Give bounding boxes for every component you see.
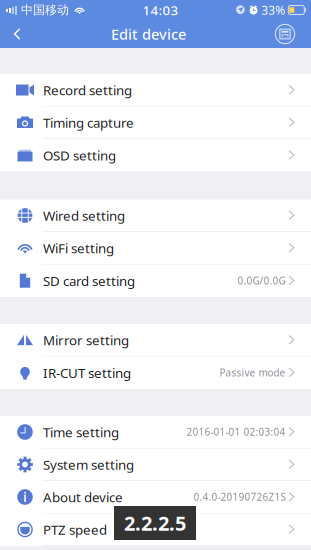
staticText: About device [43,488,123,506]
button[interactable]: Save [262,20,311,48]
staticText: Time setting [43,423,119,441]
button[interactable]: IR-CUT setting [0,356,311,389]
staticText: 2016-01-01 02:03:04 [186,425,285,439]
staticText: Wired setting [43,207,125,224]
staticText: 中国移动 [21,3,69,17]
button[interactable]: System setting [0,448,311,481]
staticText: Record setting [43,81,132,99]
button[interactable]: SD card setting [0,264,311,297]
staticText: IR-CUT setting [43,364,131,382]
staticText: 2.2.2.5 [124,510,186,536]
button[interactable]: WiFi setting [0,232,311,264]
button[interactable]: About device [0,481,311,513]
button[interactable]: Timing capture [0,106,311,139]
button[interactable]: PTZ speed [0,513,311,546]
staticText: Edit device [111,24,186,44]
button[interactable]: Record setting [0,74,311,106]
staticText: System setting [43,456,134,473]
button[interactable]: Back [0,20,35,48]
staticText: OSD setting [43,146,116,164]
staticText: Mirror setting [43,331,129,349]
staticText: 33% [261,2,285,18]
staticText: Passive mode [219,366,285,379]
button[interactable]: Mirror setting [0,324,311,356]
button[interactable]: OSD setting [0,139,311,171]
staticText: PTZ speed [43,521,107,538]
staticText: Timing capture [43,114,134,131]
staticText: 14:03 [142,1,178,19]
staticText: SD card setting [43,272,135,290]
button[interactable]: Time setting [0,416,311,448]
staticText: WiFi setting [43,239,114,257]
staticText: 0.4.0-20190726Z1S [193,490,285,504]
button[interactable]: Wired setting [0,199,311,232]
staticText: 0.0G/0.0G [237,274,285,287]
